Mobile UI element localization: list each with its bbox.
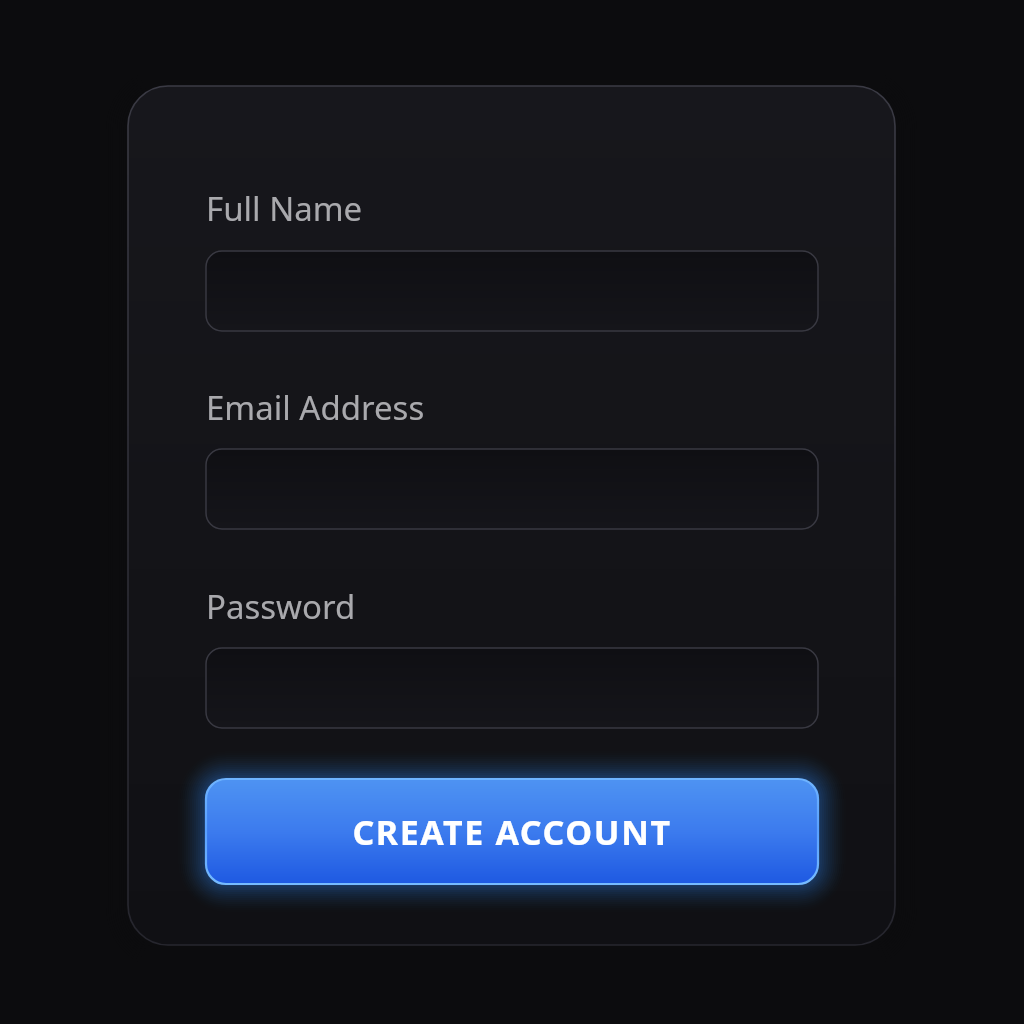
- button[interactable]: CREATE ACCOUNT: [206, 779, 818, 884]
- staticText: Full Name: [206, 186, 363, 231]
- staticText: Password: [206, 584, 356, 629]
- staticText: Email Address: [206, 385, 425, 430]
- button[interactable]: Full Name: [206, 251, 818, 331]
- staticText: CREATE ACCOUNT: [352, 809, 672, 855]
- button[interactable]: Password: [206, 648, 818, 728]
- button[interactable]: Email Address: [206, 449, 818, 529]
